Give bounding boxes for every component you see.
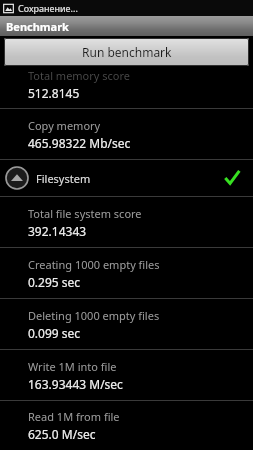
staticText: 0.099 sec [28,325,81,341]
staticText: Read 1M from file [28,409,120,424]
staticText: Write 1M into file [28,359,117,374]
button[interactable]: Collapse Filesystem [4,165,30,191]
staticText: Deleting 1000 empty files [28,308,160,323]
staticText: Run benchmark [82,44,172,60]
button[interactable]: Collapse Filesystem [0,160,253,196]
staticText: 163.93443 M/sec [28,376,123,392]
button[interactable]: Read 1M from file [0,401,253,450]
staticText: Filesystem [36,171,91,186]
staticText: Сохранение... [18,2,78,14]
staticText: 392.14343 [28,223,87,239]
staticText: 465.98322 Mb/sec [28,135,131,151]
button[interactable]: Deleting 1000 empty files [0,299,253,349]
button[interactable]: Creating 1000 empty files [0,248,253,298]
staticText: Total memory score [28,68,131,83]
staticText: Benchmark [6,19,69,34]
staticText: 625.0 M/sec [28,426,96,442]
staticText: 0.295 sec [28,274,81,290]
staticText: Creating 1000 empty files [28,257,160,272]
button[interactable]: Total memory score [0,68,253,108]
button[interactable]: Run benchmark [4,38,249,66]
button[interactable]: Write 1M into file [0,350,253,400]
button[interactable]: Copy memory [0,109,253,159]
staticText: 512.8145 [28,85,80,98]
button[interactable]: Total file system score [0,197,253,247]
staticText: Total file system score [28,206,142,221]
staticText: Copy memory [28,118,101,133]
other: Completed [219,165,245,191]
